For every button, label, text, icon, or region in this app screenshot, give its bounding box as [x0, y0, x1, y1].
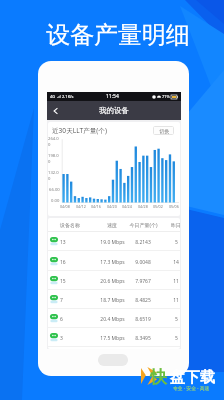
button[interactable]: 7: [48, 290, 180, 309]
staticText: 快: [150, 367, 167, 388]
staticText: 5: [175, 316, 178, 323]
staticText: 6: [60, 316, 63, 323]
staticText: 速度: [107, 222, 117, 228]
staticText: 昨日: [171, 222, 180, 228]
staticText: 5: [175, 335, 178, 342]
staticText: 16: [60, 259, 66, 266]
staticText: 2.1K/s: [62, 94, 74, 99]
staticText: 198.00: [48, 153, 60, 165]
staticText: 04/08: [60, 204, 70, 209]
staticText: 盘下载: [170, 368, 215, 387]
staticText: 04/12: [76, 204, 86, 209]
staticText: 8.2143: [135, 239, 151, 246]
staticText: 05/02: [153, 204, 163, 209]
staticText: 11: [173, 297, 179, 304]
staticText: 8.6519: [135, 316, 151, 323]
staticText: 04/20: [107, 204, 117, 209]
staticText: 我的设备: [99, 106, 129, 115]
staticText: 264.00: [48, 136, 60, 148]
button[interactable]: 15: [48, 271, 180, 290]
staticText: 20.6 Mbps: [100, 278, 125, 285]
staticText: 近30天LLT产量(个): [52, 126, 107, 135]
staticText: 18.7 Mbps: [100, 297, 125, 304]
staticText: 4G: [50, 94, 56, 99]
staticText: 7.9767: [135, 278, 151, 285]
staticText: 11: [173, 278, 179, 285]
staticText: 17.3 Mbps: [100, 259, 125, 266]
staticText: 0.00: [51, 198, 60, 204]
staticText: 05/06: [169, 204, 179, 209]
staticText: 04/24: [122, 204, 132, 209]
button[interactable]: 6: [48, 309, 180, 328]
staticText: 132.00: [48, 170, 60, 182]
button[interactable]: 切换: [153, 126, 174, 135]
staticText: 8.4825: [135, 297, 151, 304]
staticText: 20.4 Mbps: [100, 316, 125, 323]
staticText: 15: [60, 278, 66, 285]
staticText: 5: [175, 239, 178, 246]
staticText: 17.5 Mbps: [100, 335, 125, 342]
staticText: 今日产量(个): [129, 222, 158, 229]
staticText: 3: [60, 335, 63, 342]
staticText: 11:54: [106, 93, 119, 100]
button[interactable]: Back: [47, 102, 65, 120]
staticText: 专业 · 安全 · 高速: [173, 385, 210, 392]
staticText: 设备产量明细: [46, 20, 190, 50]
staticText: 14: [173, 259, 179, 266]
staticText: 13: [60, 239, 66, 246]
staticText: 9.0048: [135, 259, 151, 266]
button[interactable]: 13: [48, 232, 180, 251]
staticText: 71%: [162, 94, 170, 99]
staticText: 04/16: [91, 204, 101, 209]
staticText: 7: [60, 297, 63, 304]
button[interactable]: Home: [98, 354, 128, 366]
staticText: 66.00: [49, 187, 60, 193]
staticText: 8.3495: [135, 335, 151, 342]
staticText: 19.0 Mbps: [100, 239, 125, 246]
staticText: 切换: [159, 128, 169, 134]
button[interactable]: 16: [48, 252, 180, 271]
button[interactable]: 3: [48, 328, 180, 347]
staticText: 设备名称: [60, 222, 80, 228]
staticText: 04/28: [138, 204, 148, 209]
